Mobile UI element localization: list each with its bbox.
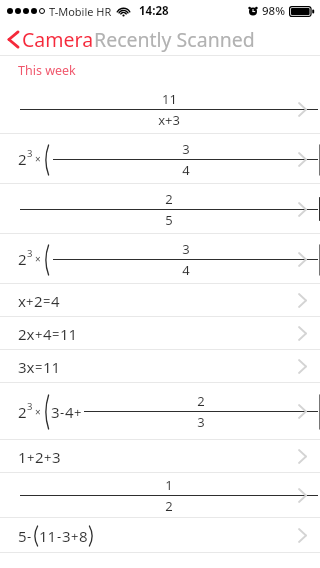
other: Back xyxy=(7,29,20,50)
button[interactable]: 2 xyxy=(0,184,320,234)
staticText: 5 xyxy=(165,211,173,229)
staticText: 3 xyxy=(27,400,33,413)
staticText: - xyxy=(57,527,62,545)
staticText: - xyxy=(60,403,65,421)
staticText: + xyxy=(71,527,79,545)
staticText: + xyxy=(44,448,52,466)
button[interactable]: 11 xyxy=(0,84,320,134)
staticText: 4 xyxy=(182,261,190,279)
button[interactable]: 2 xyxy=(0,134,320,184)
staticText: 2 xyxy=(165,497,173,515)
staticText: = xyxy=(35,358,43,376)
staticText: 3 xyxy=(27,147,33,160)
staticText: Camera xyxy=(22,26,94,53)
button[interactable]: 2 xyxy=(0,234,320,284)
staticText: 2x xyxy=(18,324,35,344)
staticText: Recently Scanned xyxy=(94,26,255,53)
staticText: 3 xyxy=(51,402,60,422)
staticText: 2 xyxy=(165,190,173,208)
staticText: This week xyxy=(18,62,76,79)
staticText: 2 xyxy=(197,392,205,410)
staticText: 1 xyxy=(165,476,173,494)
staticText: 2 xyxy=(18,402,27,422)
staticText: × xyxy=(35,252,41,266)
staticText: 3 xyxy=(182,240,190,258)
button[interactable]: x xyxy=(0,284,320,317)
staticText: 4 xyxy=(65,402,74,422)
staticText: 4 xyxy=(43,324,52,344)
staticText: + xyxy=(27,448,35,466)
staticText: 1 xyxy=(18,447,27,467)
staticText: 14:28 xyxy=(139,3,169,19)
staticText: 3x xyxy=(18,357,35,377)
staticText: 3 xyxy=(27,247,33,260)
staticText: 11 xyxy=(43,357,61,377)
staticText: 8 xyxy=(79,526,88,546)
staticText: 5 xyxy=(18,526,27,546)
button[interactable]: 1 xyxy=(0,440,320,473)
button[interactable]: 3x xyxy=(0,350,320,383)
staticText: + xyxy=(74,403,82,421)
staticText: T-Mobile HR xyxy=(49,4,112,19)
button[interactable]: 1 xyxy=(0,473,320,518)
staticText: 11 xyxy=(39,526,57,546)
staticText: 98% xyxy=(262,3,285,19)
staticText: 2 xyxy=(34,291,43,311)
staticText: 4 xyxy=(51,291,60,311)
staticText: 3 xyxy=(182,140,190,158)
staticText: 11 xyxy=(162,90,177,108)
staticText: = xyxy=(43,292,51,310)
button[interactable]: 2 xyxy=(0,383,320,440)
staticText: + xyxy=(35,325,43,343)
staticText: = xyxy=(52,325,60,343)
staticText: + xyxy=(26,292,34,310)
staticText: 2 xyxy=(18,249,27,269)
staticText: - xyxy=(27,527,32,545)
staticText: 2 xyxy=(35,447,44,467)
staticText: x+3 xyxy=(158,111,180,129)
staticText: 11 xyxy=(60,324,78,344)
button[interactable]: Back xyxy=(0,22,98,56)
staticText: 2 xyxy=(18,149,27,169)
staticText: 4 xyxy=(182,161,190,179)
staticText: 3 xyxy=(62,526,71,546)
staticText: 3 xyxy=(52,447,61,467)
staticText: × xyxy=(35,405,41,419)
button[interactable]: 2x xyxy=(0,317,320,350)
staticText: × xyxy=(35,152,41,166)
staticText: 3 xyxy=(197,413,205,431)
staticText: x xyxy=(18,291,26,311)
button[interactable]: 5 xyxy=(0,518,320,553)
